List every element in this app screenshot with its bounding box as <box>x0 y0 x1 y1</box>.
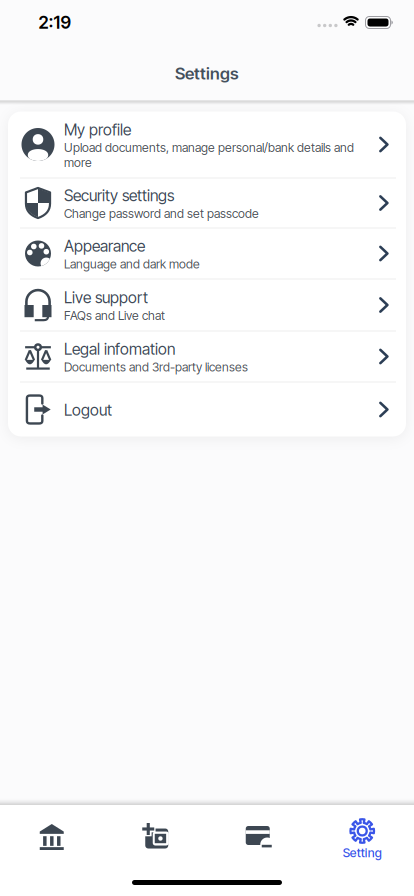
staticText: Language and dark mode <box>64 257 200 271</box>
button[interactable]: Setting <box>310 806 414 896</box>
staticText: Setting <box>343 845 382 860</box>
button[interactable]: Top up <box>103 806 207 896</box>
staticText: Live support <box>64 288 148 307</box>
button[interactable]: Logout <box>8 382 406 436</box>
button[interactable]: Appearance <box>8 228 406 278</box>
button[interactable]: Cards <box>207 806 310 896</box>
button[interactable]: Legal infomation <box>8 331 406 381</box>
staticText: Logout <box>64 400 112 419</box>
button[interactable]: My profile <box>8 111 406 177</box>
staticText: Documents and 3rd-party licenses <box>64 360 248 374</box>
staticText: Legal infomation <box>64 340 175 359</box>
staticText: Upload documents, manage personal/bank d… <box>64 140 354 170</box>
button[interactable]: Live support <box>8 279 406 330</box>
staticText: 2:19 <box>38 12 71 33</box>
staticText: Settings <box>175 63 239 84</box>
staticText: Appearance <box>64 237 145 256</box>
staticText: Change password and set passcode <box>64 206 259 221</box>
button[interactable]: Security settings <box>8 178 406 227</box>
staticText: My profile <box>64 120 131 139</box>
staticText: Security settings <box>64 186 174 205</box>
button[interactable]: Accounts <box>0 806 103 896</box>
staticText: FAQs and Live chat <box>64 308 165 323</box>
